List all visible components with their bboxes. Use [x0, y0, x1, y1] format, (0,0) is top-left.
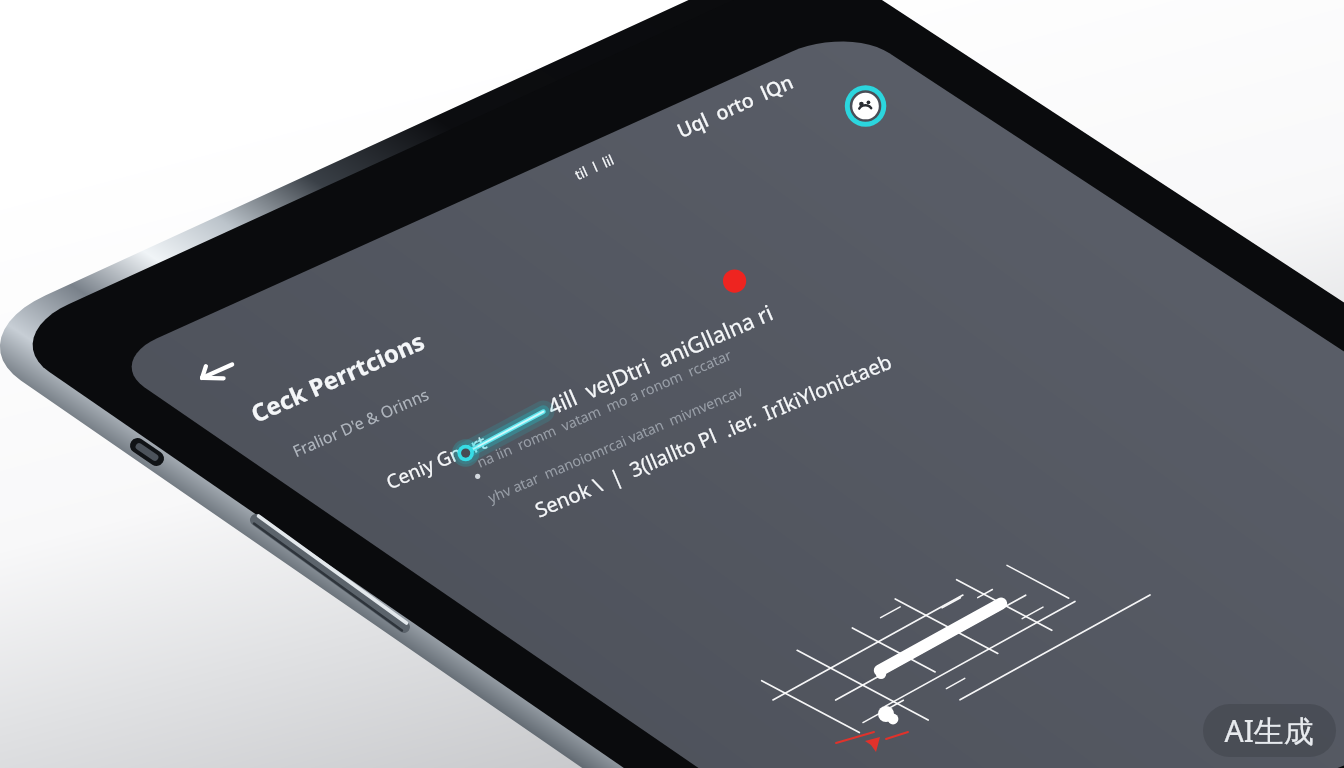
button[interactable]: Check Permissions settings screen on a p… — [0, 0, 1344, 768]
